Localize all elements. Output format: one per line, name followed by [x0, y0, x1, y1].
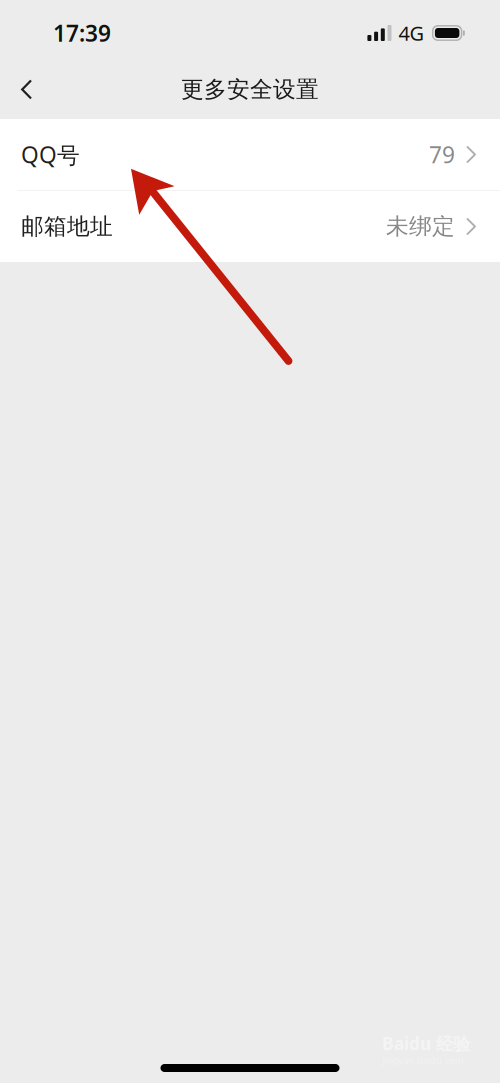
button[interactable]: Back — [0, 71, 52, 114]
staticText: 邮箱地址 — [21, 213, 113, 240]
button[interactable]: QQ号 — [0, 119, 500, 190]
staticText: QQ号 — [21, 139, 80, 170]
staticText: 未绑定 — [386, 213, 455, 240]
staticText: 4G — [398, 20, 424, 46]
staticText: Baidu 经验 — [382, 1032, 470, 1055]
staticText: 79 — [429, 139, 455, 169]
staticText: 17:39 — [53, 18, 111, 48]
staticText: 更多安全设置 — [181, 76, 319, 103]
button[interactable]: 邮箱地址 — [0, 191, 500, 262]
